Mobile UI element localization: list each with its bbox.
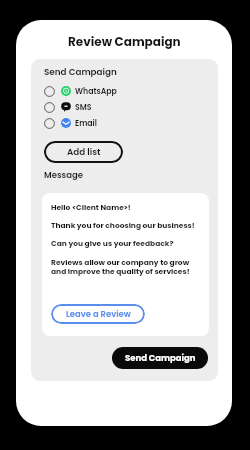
- staticText: Send Campaign: [44, 66, 117, 78]
- staticText: Leave a Review: [66, 308, 131, 320]
- staticText: Review Campaign: [68, 33, 181, 50]
- staticText: Send Campaign: [125, 352, 196, 364]
- staticText: Hello <Client Name>!: [51, 202, 131, 212]
- staticText: Reviews allow our company to grow and im…: [51, 257, 190, 277]
- staticText: SMS: [75, 102, 92, 113]
- staticText: Email: [75, 118, 97, 129]
- button[interactable]: Add list: [44, 141, 123, 163]
- button[interactable]: Leave a Review: [51, 304, 145, 324]
- staticText: Thank you for choosing our business!: [51, 220, 195, 230]
- staticText: Can you give us your feedback?: [51, 238, 174, 248]
- button[interactable]: Email: [31, 115, 218, 131]
- button[interactable]: Send Campaign: [112, 347, 208, 369]
- staticText: Add list: [67, 146, 101, 158]
- button[interactable]: SMS: [31, 99, 218, 115]
- button[interactable]: WhatsApp: [31, 83, 218, 99]
- staticText: Message: [44, 169, 83, 181]
- staticText: WhatsApp: [75, 86, 117, 97]
